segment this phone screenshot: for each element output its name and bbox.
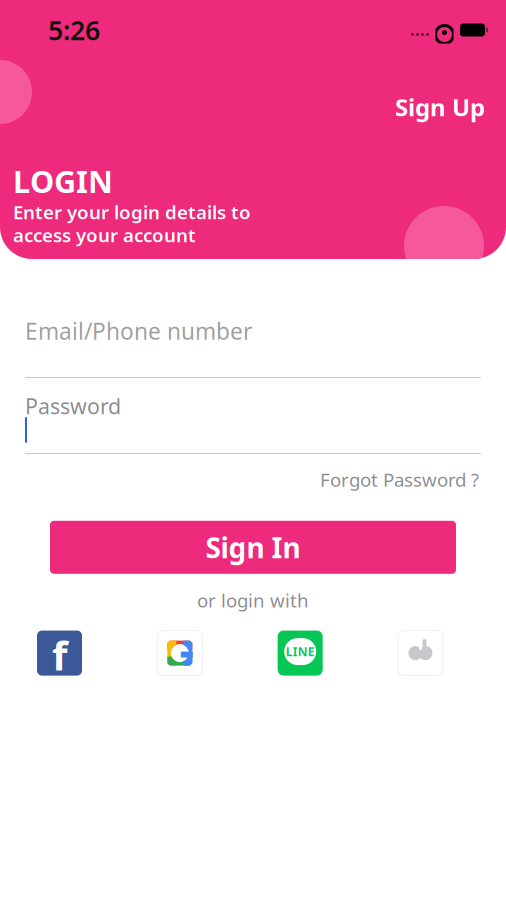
button[interactable]: Password [25, 396, 481, 454]
staticText: LINE [286, 644, 315, 659]
staticText: access your account [13, 223, 196, 247]
staticText: 5:26 [48, 12, 100, 48]
button[interactable]: Sign in with Facebook [37, 631, 82, 676]
staticText: LOGIN [13, 161, 113, 201]
button[interactable]: Sign Up [389, 85, 491, 129]
staticText: Enter your login details to [13, 200, 251, 224]
staticText: or login with [197, 588, 309, 613]
staticText: Forgot Password ? [320, 467, 479, 492]
staticText: Sign In [205, 529, 300, 566]
staticText: f [52, 628, 67, 682]
button[interactable]: Sign In [50, 521, 456, 574]
button[interactable]: Sign in with LINE [278, 631, 323, 676]
staticText: Sign Up [395, 91, 485, 123]
button[interactable]: Sign in with Apple [398, 631, 443, 676]
staticText: Email/Phone number [25, 316, 252, 346]
button[interactable]: Email/Phone number [25, 320, 481, 378]
button[interactable]: Forgot Password ? [318, 463, 481, 496]
staticText: Password [25, 392, 121, 420]
button[interactable]: Sign in with Google [157, 631, 202, 676]
